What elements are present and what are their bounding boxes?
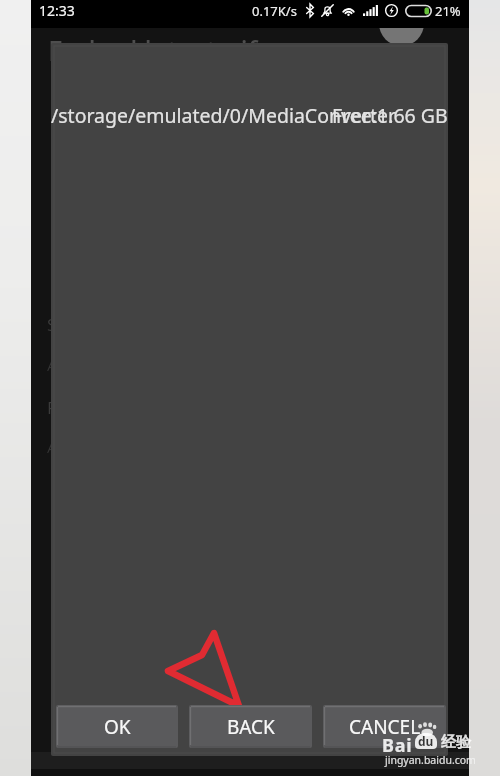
staticText: Free:1.66 GB — [332, 102, 448, 129]
staticText: Rate — [47, 396, 83, 419]
button[interactable]: BACK — [189, 705, 312, 748]
staticText: Auto — [47, 355, 81, 375]
staticText: Bai — [382, 733, 413, 758]
staticText: Embed latest gif — [48, 32, 258, 69]
staticText: Size — [47, 313, 79, 336]
staticText: 21% — [435, 2, 461, 20]
staticText: Auto — [47, 437, 81, 457]
staticText: OK — [104, 714, 131, 740]
staticText: CANCEL — [349, 714, 421, 740]
staticText: BACK — [227, 714, 275, 740]
button[interactable]: OK — [56, 705, 178, 748]
staticText: /storage/emulated/0/MediaConverter — [51, 102, 397, 129]
staticText: du — [418, 733, 434, 749]
button[interactable]: CANCEL — [323, 705, 446, 748]
staticText: jingyan.baidu.com — [385, 753, 476, 767]
staticText: 12:33 — [39, 1, 75, 20]
staticText: 经验 — [441, 733, 471, 752]
staticText: 0.17K/s — [252, 2, 297, 20]
